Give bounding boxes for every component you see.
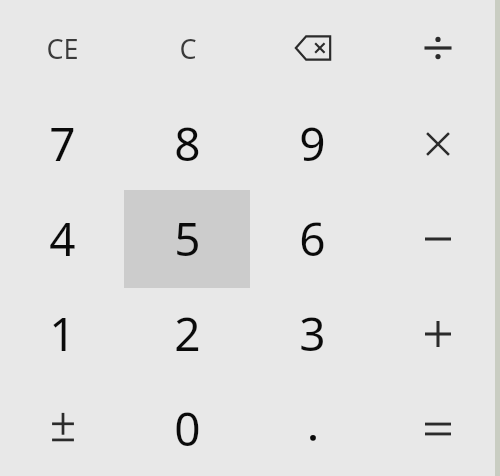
staticText: 9 [299,112,326,175]
staticText: 1 [49,302,76,365]
staticText: CE [46,30,79,67]
button[interactable]: CE [0,0,125,96]
staticText: 7 [49,112,76,175]
button[interactable]: Plus [375,286,500,381]
button[interactable]: 0 [125,381,250,476]
button[interactable]: 1 [0,286,125,381]
button[interactable]: Multiply [375,96,500,191]
staticText: 0 [174,397,201,460]
staticText: 8 [174,112,201,175]
staticText: 3 [299,302,326,365]
button[interactable]: C [125,0,250,96]
button[interactable]: Backspace [250,0,375,96]
button[interactable]: Divide [375,0,500,96]
staticText: 5 [174,207,201,270]
button[interactable]: Equals [375,381,500,476]
button[interactable]: Plus minus [0,381,125,476]
staticText: C [179,30,197,67]
staticText: 2 [174,302,201,365]
button[interactable]: 2 [125,286,250,381]
button[interactable]: 6 [250,191,375,286]
button[interactable]: Decimal point [250,381,375,476]
button[interactable]: Minus [375,191,500,286]
button[interactable]: 4 [0,191,125,286]
button[interactable]: 8 [125,96,250,191]
button[interactable]: 5 [125,191,250,286]
staticText: 4 [49,207,76,270]
button[interactable]: 3 [250,286,375,381]
staticText: 6 [299,207,326,270]
button[interactable]: 7 [0,96,125,191]
button[interactable]: 9 [250,96,375,191]
